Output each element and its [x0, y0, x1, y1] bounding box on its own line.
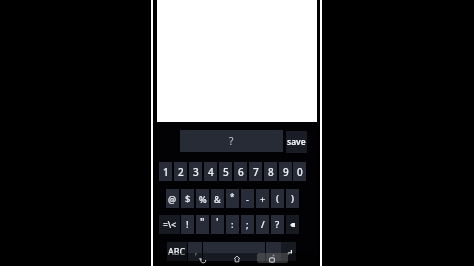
button[interactable]: 1 — [159, 162, 172, 181]
staticText: ABC — [168, 246, 186, 258]
staticText: - — [246, 193, 249, 205]
staticText: ! — [186, 218, 189, 231]
staticText: 2 — [178, 165, 184, 179]
button[interactable]: ABC — [167, 242, 187, 261]
staticText: $ — [185, 192, 191, 205]
staticText: 5 — [223, 165, 229, 179]
button[interactable]: + — [256, 189, 269, 208]
button[interactable]: : — [226, 215, 239, 234]
button[interactable]: " — [196, 215, 209, 234]
button[interactable]: Comma — [188, 242, 202, 261]
button[interactable]: Enter — [281, 242, 296, 261]
button[interactable]: Space — [203, 242, 265, 261]
staticText: 3 — [193, 165, 199, 179]
staticText: 6 — [238, 165, 244, 179]
staticText: 0 — [297, 165, 303, 179]
staticText: ) — [291, 192, 294, 205]
button[interactable]: * — [226, 189, 239, 208]
button[interactable]: save — [286, 131, 307, 153]
button[interactable]: ! — [181, 215, 194, 234]
button[interactable]: @ — [166, 189, 179, 208]
button[interactable]: 3 — [189, 162, 202, 181]
button[interactable]: Backspace — [286, 215, 299, 234]
button[interactable]: $ — [181, 189, 194, 208]
button[interactable]: ? — [180, 130, 283, 152]
staticText: ; — [246, 218, 249, 231]
staticText: save — [287, 136, 306, 147]
staticText: 8 — [268, 165, 274, 179]
staticText: + — [260, 193, 266, 205]
button[interactable]: 0 — [293, 162, 306, 181]
staticText: ( — [276, 192, 279, 205]
staticText: & — [214, 193, 221, 205]
button[interactable]: ; — [241, 215, 254, 234]
button[interactable]: =\< — [159, 215, 180, 234]
staticText: ? — [229, 134, 234, 148]
button[interactable]: & — [211, 189, 224, 208]
staticText: : — [231, 218, 234, 231]
button[interactable]: % — [196, 189, 209, 208]
staticText: / — [261, 218, 265, 231]
staticText: =\< — [163, 219, 176, 231]
button[interactable]: 8 — [264, 162, 277, 181]
staticText: 9 — [283, 165, 289, 179]
button[interactable]: ) — [286, 189, 299, 208]
staticText: ' — [216, 215, 219, 229]
button[interactable]: 6 — [234, 162, 247, 181]
button[interactable]: 2 — [174, 162, 187, 181]
button[interactable]: 7 — [249, 162, 262, 181]
staticText: 1 — [163, 165, 169, 179]
staticText: 7 — [253, 165, 259, 179]
button[interactable]: 5 — [219, 162, 232, 181]
staticText: ? — [275, 218, 280, 231]
staticText: % — [199, 193, 207, 205]
staticText: " — [200, 215, 205, 229]
button[interactable]: Period — [266, 242, 281, 261]
button[interactable]: - — [241, 189, 254, 208]
button[interactable]: Home — [228, 253, 246, 264]
button[interactable]: ( — [271, 189, 284, 208]
button[interactable]: ? — [271, 215, 284, 234]
button[interactable]: Recent apps — [263, 254, 281, 265]
staticText: 4 — [208, 165, 214, 179]
button[interactable]: / — [256, 215, 269, 234]
button[interactable]: Back — [193, 254, 211, 265]
button[interactable]: ' — [211, 215, 224, 234]
button[interactable]: 9 — [279, 162, 292, 181]
button[interactable]: 4 — [204, 162, 217, 181]
staticText: * — [230, 191, 235, 202]
staticText: @ — [168, 193, 177, 205]
